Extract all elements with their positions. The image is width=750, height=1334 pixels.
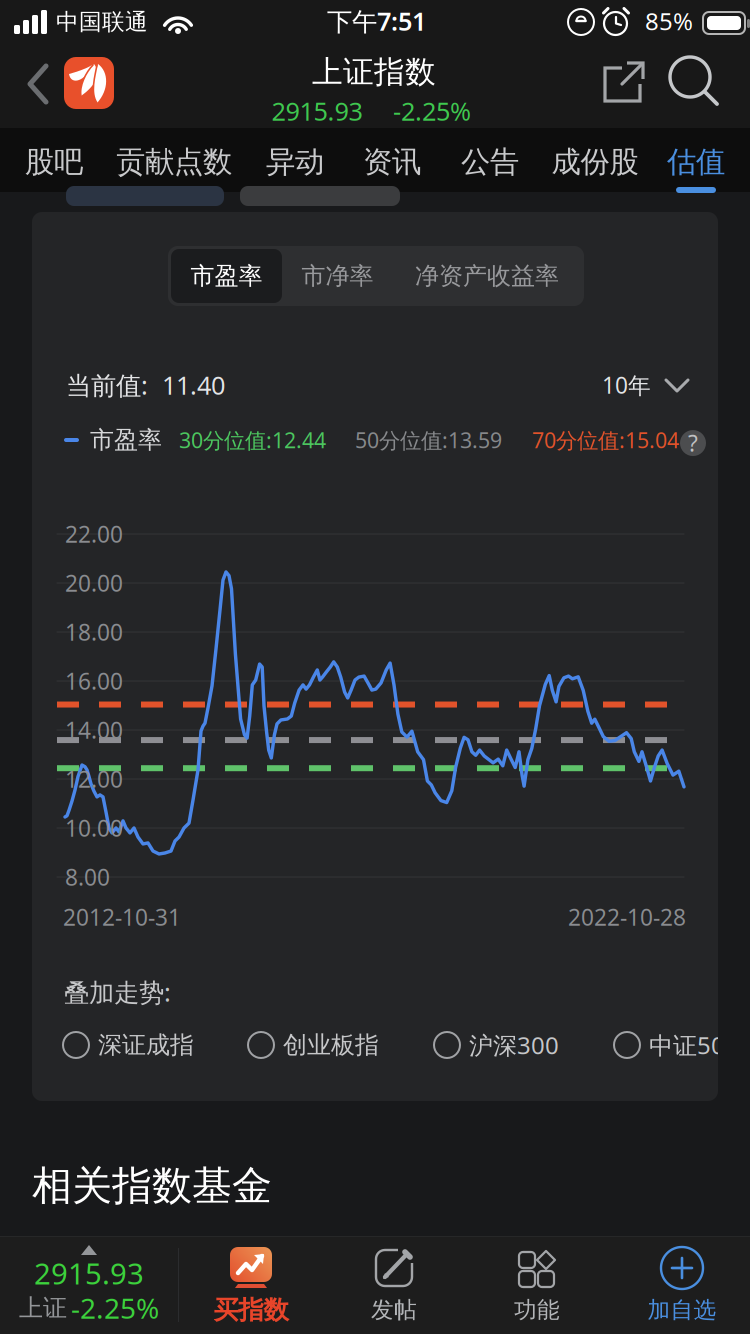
staticText: 异动 xyxy=(266,144,324,180)
button[interactable]: 帮助 xyxy=(680,428,706,458)
staticText: 8.00 xyxy=(65,862,110,892)
staticText: 相关指数基金 xyxy=(32,1161,272,1210)
staticText: 2022-10-28 xyxy=(568,902,686,932)
button[interactable]: 资讯 xyxy=(352,140,432,184)
button[interactable]: 功能 xyxy=(467,1237,607,1334)
staticText: 上证 xyxy=(19,1293,67,1323)
staticText: 市盈率 xyxy=(190,261,262,291)
staticText: 2012-10-31 xyxy=(63,902,181,932)
button[interactable]: 成份股 xyxy=(540,140,650,184)
staticText: 加自选 xyxy=(647,1296,716,1324)
staticText: 沪深300 xyxy=(469,1029,559,1061)
button[interactable]: 市盈率 xyxy=(171,249,282,303)
staticText: 22.00 xyxy=(65,519,123,549)
staticText: 14.00 xyxy=(65,715,123,745)
button[interactable]: 异动 xyxy=(255,140,335,184)
button[interactable]: 中证500 xyxy=(614,1024,750,1066)
staticText: 20.00 xyxy=(65,568,123,598)
button[interactable]: 贡献点数 xyxy=(104,140,244,184)
staticText: 贡献点数 xyxy=(116,144,232,180)
staticText: 2915.93 xyxy=(34,1253,144,1292)
staticText: 10年 xyxy=(602,370,651,400)
button[interactable]: 沪深300 xyxy=(434,1024,579,1066)
staticText: 叠加走势: xyxy=(64,975,171,1009)
staticText: 中国联通 xyxy=(56,8,148,36)
staticText: 发帖 xyxy=(371,1296,417,1324)
staticText: 深证成指 xyxy=(98,1030,194,1060)
staticText: 12.00 xyxy=(65,764,123,794)
button[interactable]: 分享 xyxy=(596,54,654,112)
button[interactable]: 发帖 xyxy=(324,1237,464,1334)
staticText: ? xyxy=(688,428,698,458)
staticText: 净资产收益率 xyxy=(415,261,559,291)
staticText: 30分位值:12.44 xyxy=(179,426,326,454)
button[interactable]: 创业板指 xyxy=(248,1024,398,1066)
button[interactable]: 2915.93 xyxy=(0,1237,178,1334)
staticText: 16.00 xyxy=(65,666,123,696)
staticText: 公告 xyxy=(461,144,519,180)
button[interactable]: 股吧 xyxy=(14,140,94,184)
button[interactable]: 净资产收益率 xyxy=(393,249,581,303)
staticText: 上证指数 xyxy=(312,53,436,91)
staticText: 85% xyxy=(645,5,693,37)
staticText: 18.00 xyxy=(65,617,123,647)
staticText: 2915.93 xyxy=(271,94,362,128)
button[interactable]: 10年 xyxy=(596,363,694,407)
staticText: 股吧 xyxy=(25,144,83,180)
staticText: 10.00 xyxy=(65,813,123,843)
staticText: 功能 xyxy=(514,1296,560,1324)
staticText: 成份股 xyxy=(551,144,638,180)
staticText: 市净率 xyxy=(301,261,373,291)
staticText: 中证500 xyxy=(649,1029,739,1061)
button[interactable]: 买指数 xyxy=(181,1237,321,1334)
button[interactable]: 估值 xyxy=(656,140,736,184)
staticText: 70分位值:15.04 xyxy=(532,426,679,454)
staticText: -2.25% xyxy=(71,1289,159,1327)
staticText: -2.25% xyxy=(393,94,471,128)
button[interactable]: 加自选 xyxy=(612,1237,750,1334)
button[interactable]: 深证成指 xyxy=(63,1024,213,1066)
staticText: 买指数 xyxy=(213,1294,288,1325)
staticText: 50分位值:13.59 xyxy=(355,426,502,454)
button[interactable]: 返回 xyxy=(8,50,68,118)
button[interactable]: 公告 xyxy=(450,140,530,184)
staticText: 下午7:51 xyxy=(327,4,426,38)
button[interactable]: 搜索 xyxy=(666,54,728,112)
staticText: 估值 xyxy=(667,144,725,180)
staticText: 资讯 xyxy=(363,144,421,180)
staticText: 当前值: 11.40 xyxy=(66,368,225,402)
button[interactable]: 东方财富 xyxy=(64,57,114,109)
button[interactable]: 市净率 xyxy=(282,249,393,303)
staticText: 创业板指 xyxy=(283,1030,379,1060)
staticText: 市盈率 xyxy=(90,425,162,455)
